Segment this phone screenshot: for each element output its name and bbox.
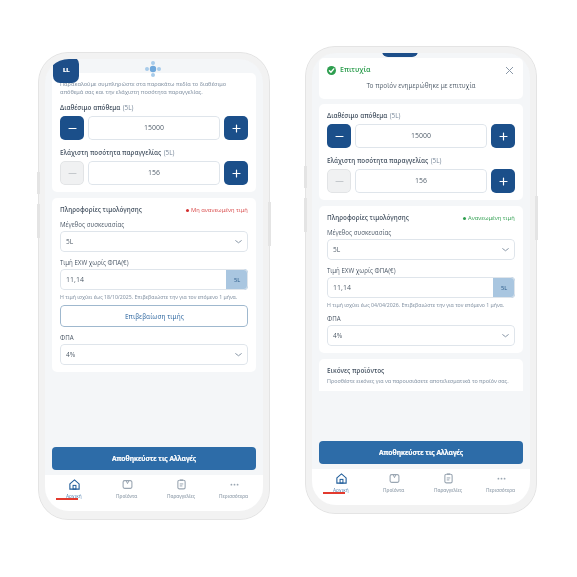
button[interactable]: 5L	[66, 231, 242, 252]
button[interactable]: 156	[88, 161, 220, 185]
button[interactable]: 4%	[66, 344, 242, 365]
button[interactable]: Επιβεβαίωση τιμής	[60, 305, 248, 327]
staticText: Προσθέστε εικόνες για να παρουσιάσετε απ…	[327, 377, 509, 384]
staticText: (5L)	[162, 148, 175, 157]
staticText: LL	[63, 66, 70, 74]
staticText: 5L	[333, 245, 502, 254]
staticText: Παρακαλούμε συμπληρώστε στα παρακάτω πεδ…	[60, 80, 248, 96]
button[interactable]: Αποθηκεύστε τις Αλλαγές	[319, 441, 523, 464]
staticText: Μέγεθος συσκευασίας	[327, 228, 392, 236]
staticText: Εικόνες προϊόντος	[327, 366, 385, 375]
staticText: 156	[415, 176, 428, 186]
button[interactable]: Decrease	[327, 124, 351, 148]
staticText: 11,14	[66, 275, 226, 285]
button[interactable]: Increase	[491, 169, 515, 193]
staticText: 15000	[144, 123, 165, 133]
staticText: Τιμή EXW χωρίς ΦΠΑ(€)	[327, 266, 396, 274]
staticText: 4%	[333, 331, 502, 340]
button[interactable]: Αποθηκεύστε τις Αλλαγές	[52, 447, 256, 470]
button[interactable]: 15000	[355, 124, 487, 148]
staticText: Παραγγελίες	[434, 487, 463, 494]
staticText: 5L	[66, 237, 235, 246]
staticText: 5L	[234, 276, 241, 284]
staticText: Ανανεωμένη τιμή	[468, 214, 515, 222]
staticText: Η τιμή ισχύει έως 18/10/2025. Επιβεβαιώσ…	[60, 293, 238, 300]
staticText: Μέγεθος συσκευασίας	[60, 220, 125, 228]
staticText: Αποθηκεύστε τις Αλλαγές	[112, 454, 197, 463]
button[interactable]: 11,14	[327, 277, 515, 298]
button[interactable]: Increase	[491, 124, 515, 148]
staticText: Παραγγελίες	[167, 493, 196, 500]
button[interactable]: Περισσότερα	[210, 479, 258, 500]
button[interactable]: Decrease	[327, 169, 351, 193]
staticText: Ελάχιστη ποσότητα παραγγελίας	[327, 156, 429, 165]
staticText: Περισσότερα	[219, 493, 249, 500]
staticText: Η τιμή ισχύει έως 04/04/2026. Επιβεβαιώσ…	[327, 301, 505, 308]
staticText: 11,14	[333, 283, 493, 293]
staticText: Αρχική	[66, 493, 82, 500]
staticText: Επιβεβαίωση τιμής	[125, 312, 184, 321]
button[interactable]: Increase	[224, 161, 248, 185]
staticText: ΦΠΑ	[327, 314, 341, 322]
button[interactable]: Προϊόντα	[370, 473, 418, 494]
staticText: Το προϊόν ενημερώθηκε με επιτυχία	[327, 81, 515, 90]
button[interactable]: Decrease	[60, 116, 84, 140]
button[interactable]: 156	[355, 169, 487, 193]
button[interactable]: Profile	[53, 59, 79, 83]
button[interactable]: Προϊόντα	[103, 479, 151, 500]
button[interactable]: Increase	[224, 116, 248, 140]
staticText: Διαθέσιμο απόθεμα	[60, 103, 121, 112]
staticText: Προϊόντα	[116, 493, 138, 500]
button[interactable]: 11,14	[60, 269, 248, 290]
staticText: (5L)	[121, 103, 134, 112]
staticText: 15000	[411, 131, 432, 141]
staticText: Μη ανανεωμένη τιμή	[191, 206, 248, 214]
staticText: Αρχική	[333, 487, 349, 494]
button[interactable]: Περισσότερα	[477, 473, 525, 494]
staticText: Πληροφορίες τιμολόγησης	[327, 213, 409, 222]
button[interactable]: 4%	[333, 325, 509, 346]
button[interactable]: Decrease	[60, 161, 84, 185]
button[interactable]: Close	[503, 64, 515, 76]
button[interactable]: 15000	[88, 116, 220, 140]
button[interactable]: 5L	[333, 239, 509, 260]
staticText: 4%	[66, 350, 235, 359]
button[interactable]: Αρχική	[317, 473, 365, 494]
staticText: ΦΠΑ	[60, 333, 74, 341]
staticText: (5L)	[388, 111, 401, 120]
staticText: (5L)	[429, 156, 442, 165]
staticText: Περισσότερα	[486, 487, 516, 494]
staticText: Διαθέσιμο απόθεμα	[327, 111, 388, 120]
staticText: 5L	[501, 284, 508, 292]
staticText: Προϊόντα	[383, 487, 405, 494]
staticText: Επιτυχία	[340, 65, 371, 75]
staticText: Τιμή EXW χωρίς ΦΠΑ(€)	[60, 258, 129, 266]
button[interactable]: Παραγγελίες	[157, 479, 205, 500]
staticText: Πληροφορίες τιμολόγησης	[60, 205, 142, 214]
button[interactable]: Παραγγελίες	[424, 473, 472, 494]
staticText: Αποθηκεύστε τις Αλλαγές	[379, 448, 464, 457]
staticText: 156	[148, 168, 161, 178]
staticText: Ελάχιστη ποσότητα παραγγελίας	[60, 148, 162, 157]
button[interactable]: Αρχική	[50, 479, 98, 500]
